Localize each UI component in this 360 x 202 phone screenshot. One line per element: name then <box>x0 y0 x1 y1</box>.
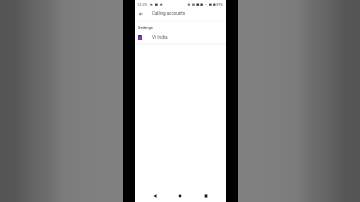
button[interactable]: Vi India <box>135 31 226 43</box>
staticText: 12:25 <box>137 2 147 7</box>
staticText: Vi India <box>152 35 168 41</box>
button[interactable]: Home <box>174 190 186 202</box>
button[interactable]: Navigate up <box>135 8 147 20</box>
button[interactable]: Recent apps <box>200 190 212 202</box>
staticText: 39% <box>216 2 224 6</box>
staticText: Calling accounts <box>152 11 186 16</box>
button[interactable]: Back <box>149 190 161 202</box>
staticText: Settings <box>138 25 153 30</box>
